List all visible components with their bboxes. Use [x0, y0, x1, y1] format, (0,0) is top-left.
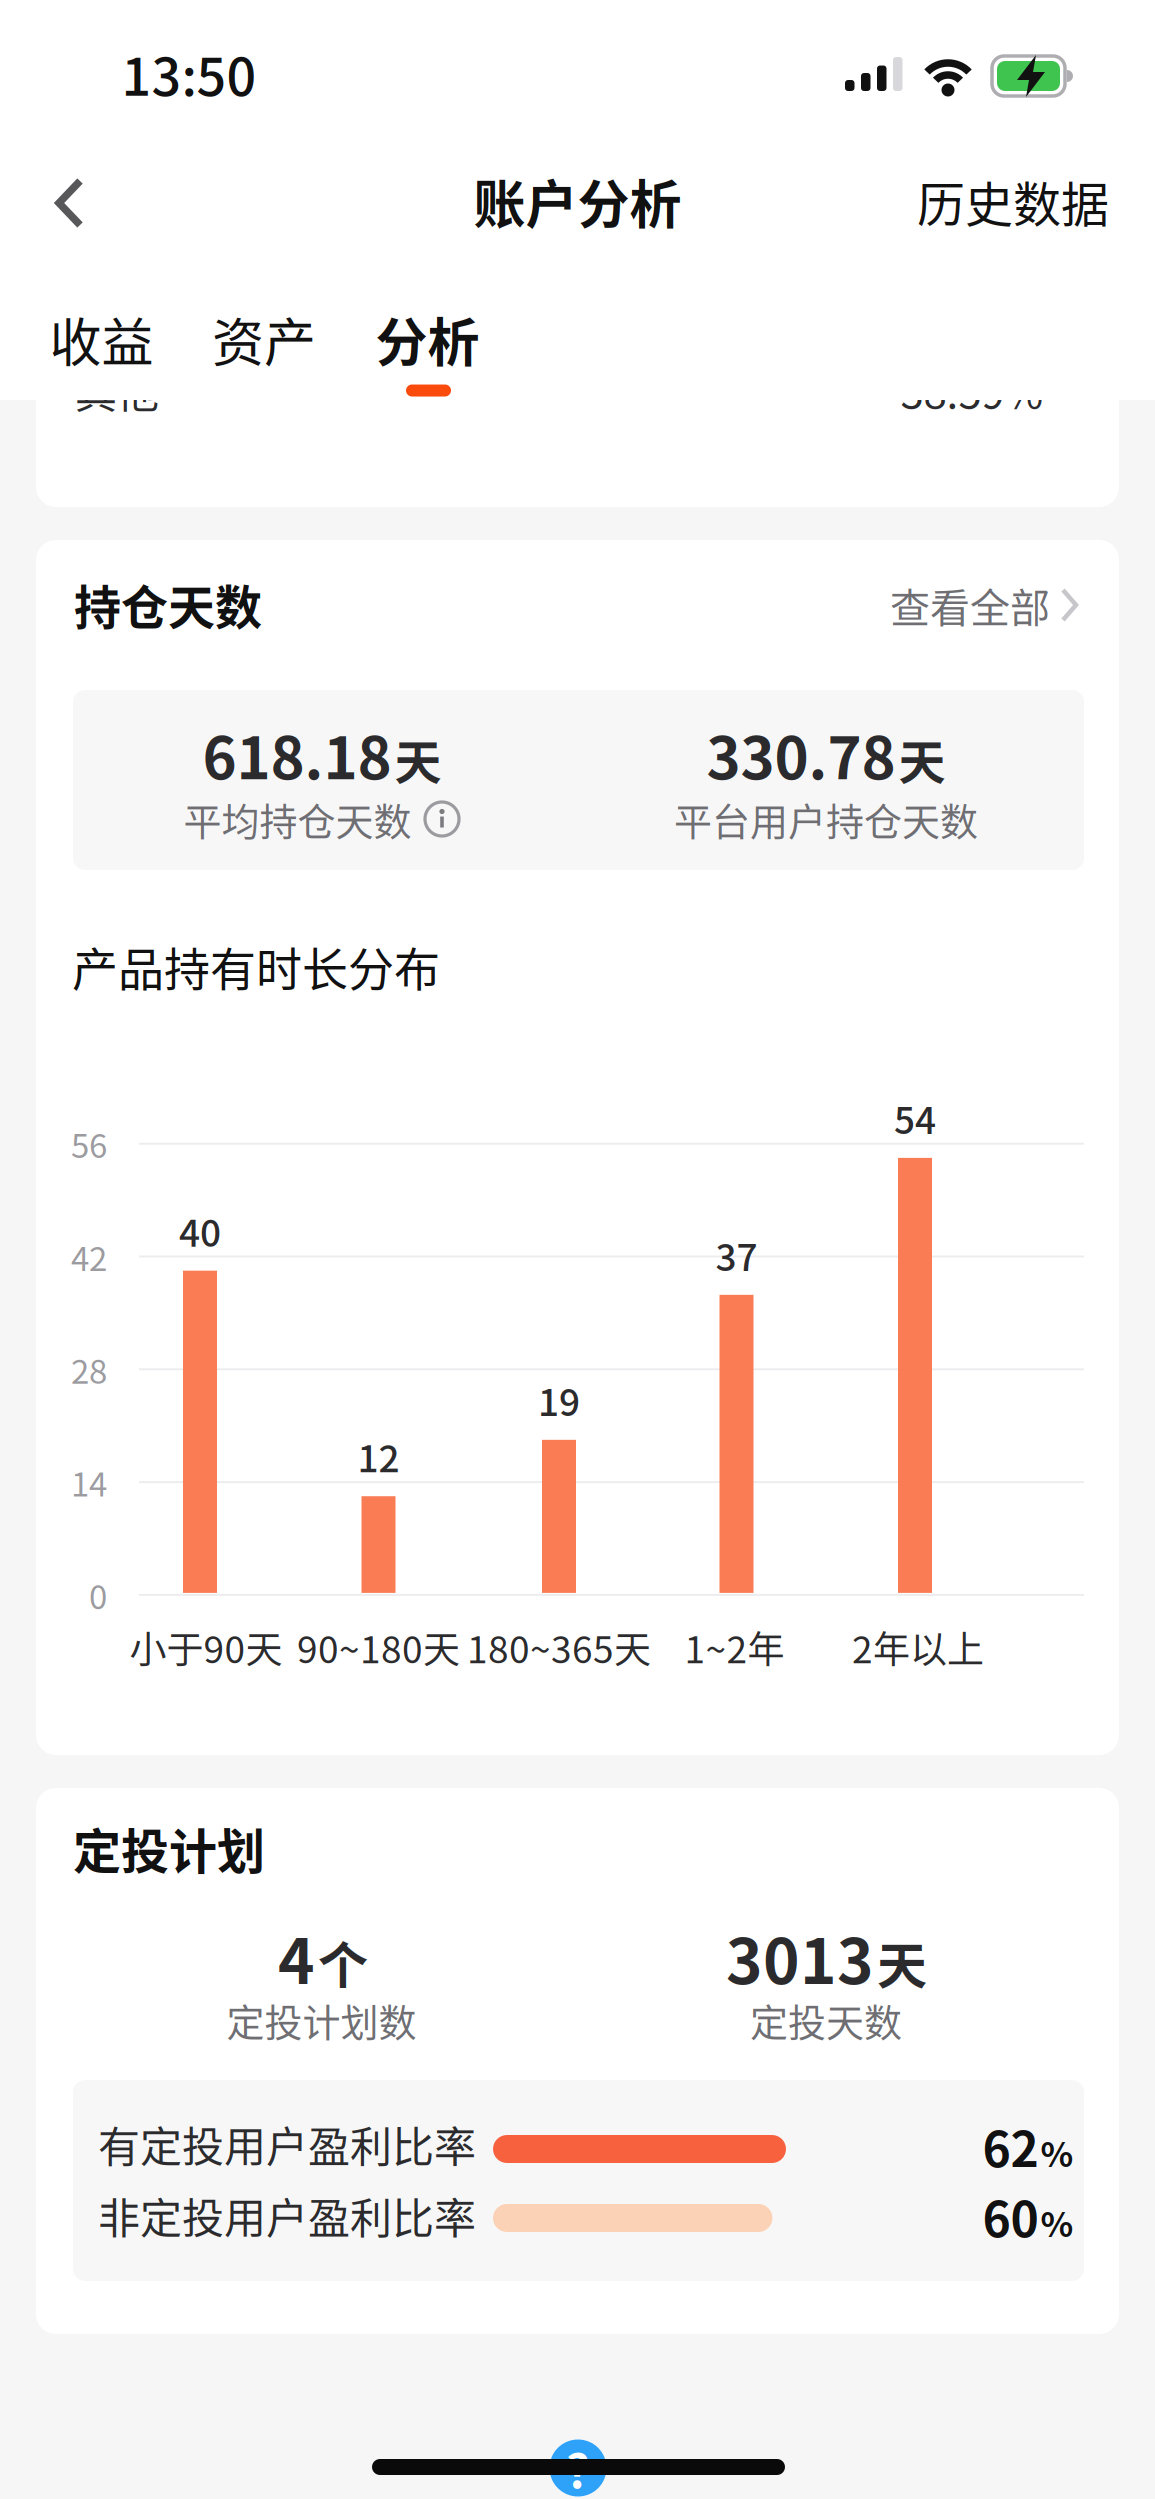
button[interactable]: 查看全部 — [890, 576, 1080, 634]
staticText: 查看全部 — [890, 576, 1050, 634]
staticText: 13:50 — [121, 35, 256, 111]
staticText: 天 — [877, 1926, 927, 1998]
staticText: 定投计划 — [73, 1813, 265, 1883]
staticText: 618.18 — [202, 712, 391, 796]
staticText: 14 — [71, 1458, 107, 1506]
staticText: ? — [566, 2435, 590, 2499]
staticText: 天 — [898, 725, 945, 793]
staticText: 账户分析 — [473, 163, 681, 239]
staticText: 56 — [71, 1120, 107, 1168]
staticText: 38.59% — [900, 360, 1043, 420]
staticText: 0 — [89, 1571, 107, 1619]
staticText: 60 — [982, 2181, 1038, 2251]
staticText: 平台用户持仓天数 — [674, 791, 978, 846]
staticText: 330.78 — [706, 712, 895, 796]
button[interactable]: Info — [423, 800, 460, 837]
button[interactable]: 资产 — [212, 301, 316, 377]
staticText: 定投天数 — [750, 1992, 902, 2047]
staticText: 3013 — [726, 1912, 874, 2002]
staticText: 天 — [394, 725, 441, 793]
staticText: 2年以上 — [852, 1620, 984, 1674]
staticText: % — [1040, 2197, 1073, 2247]
staticText: 12 — [357, 1429, 399, 1483]
staticText: 40 — [179, 1204, 221, 1257]
staticText: 19 — [538, 1373, 580, 1427]
staticText: 37 — [715, 1228, 757, 1282]
staticText: 分析 — [375, 301, 479, 377]
staticText: 收益 — [49, 301, 153, 377]
staticText: 180~365天 — [467, 1620, 651, 1674]
staticText: 持仓天数 — [74, 570, 262, 638]
button[interactable]: 历史数据 — [917, 166, 1109, 236]
staticText: 历史数据 — [917, 166, 1109, 236]
staticText: 4 — [278, 1912, 315, 2002]
staticText: % — [1040, 2127, 1073, 2177]
staticText: 28 — [71, 1345, 107, 1393]
button[interactable]: 分析 — [375, 301, 479, 377]
staticText: 54 — [894, 1091, 936, 1145]
staticText: 42 — [71, 1233, 107, 1280]
button[interactable]: Help — [549, 2435, 606, 2499]
staticText: 其他 — [75, 360, 159, 420]
staticText: 有定投用户盈利比率 — [98, 2114, 476, 2174]
staticText: 资产 — [212, 301, 316, 377]
button[interactable]: 收益 — [49, 301, 153, 377]
staticText: 平均持仓天数 — [183, 791, 411, 846]
staticText: 62 — [982, 2111, 1038, 2181]
staticText: 定投计划数 — [226, 1992, 416, 2047]
staticText: 1~2年 — [684, 1620, 784, 1674]
button[interactable]: Back — [55, 177, 85, 229]
staticText: 90~180天 — [297, 1620, 460, 1674]
staticText: 产品持有时长分布 — [72, 933, 440, 999]
staticText: 小于90天 — [129, 1620, 282, 1674]
staticText: 非定投用户盈利比率 — [98, 2185, 476, 2246]
staticText: 个 — [318, 1926, 368, 1998]
